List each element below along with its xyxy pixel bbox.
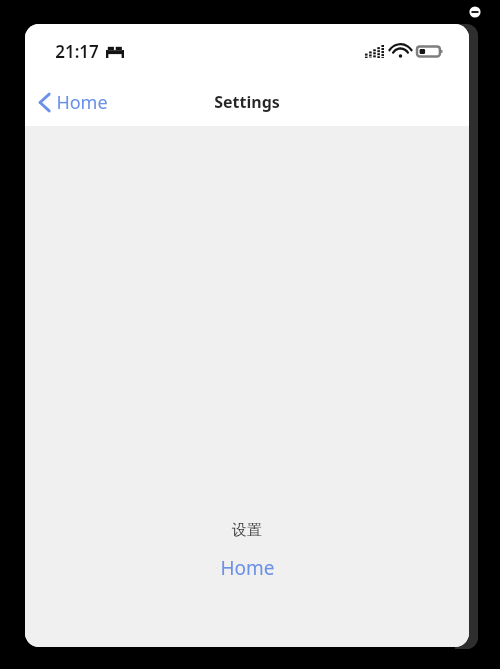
button[interactable]: Home bbox=[214, 553, 281, 583]
button[interactable]: Home bbox=[34, 86, 112, 119]
button[interactable]: Minimize bbox=[466, 3, 484, 21]
staticText: 设置 bbox=[232, 521, 262, 540]
staticText: Home bbox=[56, 90, 108, 115]
staticText: Settings bbox=[214, 91, 280, 113]
staticText: 21:17 bbox=[55, 40, 99, 63]
staticText: Home bbox=[220, 555, 275, 581]
